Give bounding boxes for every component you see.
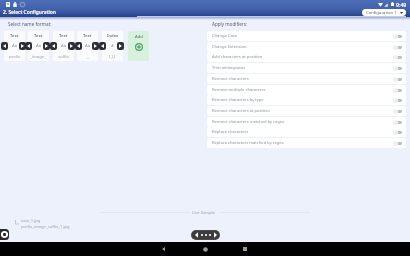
- staticText: Text: [59, 33, 68, 39]
- button[interactable]: Move right: [43, 42, 50, 50]
- staticText: Remove multiple characters: [212, 87, 266, 93]
- button[interactable]: Move left: [25, 42, 32, 50]
- staticText: _image_: [30, 54, 47, 60]
- staticText: Remove characters: [212, 76, 249, 82]
- staticText: Add: [135, 34, 143, 40]
- staticText: Aa: [12, 43, 18, 49]
- staticText: suffix: [58, 54, 69, 60]
- button[interactable]: Remove characters: [207, 74, 406, 84]
- button[interactable]: Add characters at position: [207, 52, 406, 62]
- button[interactable]: Toggle: [393, 141, 402, 146]
- button[interactable]: Toggle: [393, 98, 402, 103]
- staticText: new_1.jpg: [21, 218, 41, 224]
- staticText: Apply modifiers:: [212, 21, 248, 27]
- button[interactable]: Move right: [92, 42, 99, 50]
- staticText: prefix_image_suffix_1.jpg: [21, 224, 70, 230]
- staticText: Trim whitespaces: [212, 65, 246, 71]
- button[interactable]: Move right: [19, 42, 26, 50]
- button[interactable]: Toggle: [393, 34, 402, 39]
- staticText: I,I,I: [109, 54, 116, 60]
- button[interactable]: Toggle: [393, 88, 402, 93]
- staticText: Aa: [85, 43, 91, 49]
- staticText: Text: [83, 33, 92, 39]
- button[interactable]: Add: [128, 31, 149, 61]
- button[interactable]: Remove characters at position: [207, 106, 406, 116]
- button[interactable]: Toggle: [393, 130, 402, 135]
- staticText: Select name format:: [8, 21, 52, 27]
- staticText: Change Extension: [212, 44, 247, 50]
- button[interactable]: Index: [102, 31, 123, 61]
- staticText: Replace characters matched by regex: [212, 140, 284, 146]
- button[interactable]: Change Case: [207, 31, 406, 41]
- button[interactable]: Configuration 1: [362, 9, 406, 16]
- button[interactable]: Toggle: [393, 120, 402, 125]
- button[interactable]: Move left: [99, 42, 106, 50]
- button[interactable]: Replace characters: [207, 127, 406, 137]
- button[interactable]: Toggle: [393, 77, 402, 82]
- staticText: Aa: [61, 43, 67, 49]
- button[interactable]: Remove multiple characters: [207, 85, 406, 95]
- button[interactable]: Back: [158, 244, 168, 254]
- button[interactable]: Toggle: [393, 45, 402, 50]
- staticText: Live Sample: [192, 210, 215, 216]
- staticText: Text: [10, 33, 19, 39]
- button[interactable]: Move left: [75, 42, 82, 50]
- button[interactable]: Move left: [1, 42, 8, 50]
- staticText: Remove characters matched by regex: [212, 119, 285, 125]
- staticText: Remove characters by type: [212, 97, 264, 103]
- staticText: Index: [107, 33, 119, 39]
- staticText: Replace characters: [212, 129, 249, 135]
- button[interactable]: Toggle: [393, 66, 402, 71]
- staticText: Text: [34, 33, 43, 39]
- button[interactable]: Move right: [117, 42, 124, 50]
- button[interactable]: Remove characters matched by regex: [207, 117, 406, 127]
- staticText: Add characters at position: [212, 54, 263, 60]
- button[interactable]: Replace characters matched by regex: [207, 138, 406, 148]
- button[interactable]: Trim whitespaces: [207, 63, 406, 73]
- button[interactable]: Toggle: [393, 109, 402, 114]
- button[interactable]: Toggle: [393, 55, 402, 60]
- staticText: Configuration 1: [366, 10, 397, 16]
- staticText: 2. Select Configuration: [3, 9, 56, 16]
- button[interactable]: Next sample: [212, 231, 218, 239]
- staticText: #: [111, 43, 114, 49]
- button[interactable]: Change Extension: [207, 42, 406, 52]
- button[interactable]: Text: [53, 31, 74, 61]
- staticText: _: [87, 54, 89, 60]
- button[interactable]: Move left: [50, 42, 57, 50]
- button[interactable]: Remove characters by type: [207, 95, 406, 105]
- button[interactable]: Home: [200, 244, 210, 254]
- button[interactable]: Move right: [68, 42, 75, 50]
- button[interactable]: Screen recorder: [0, 229, 9, 240]
- staticText: Aa: [36, 43, 42, 49]
- staticText: prefix: [9, 54, 21, 60]
- button[interactable]: Text: [28, 31, 49, 61]
- staticText: 9:49: [396, 1, 407, 8]
- staticText: Remove characters at position: [212, 108, 271, 114]
- button[interactable]: Previous sample: [193, 231, 199, 239]
- staticText: Change Case: [212, 33, 237, 39]
- button[interactable]: Recent apps: [240, 244, 250, 254]
- button[interactable]: Text: [4, 31, 25, 61]
- button[interactable]: Text: [77, 31, 98, 61]
